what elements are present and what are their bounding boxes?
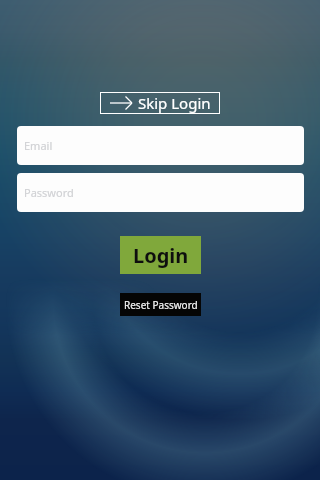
staticText: Password [24,185,74,200]
staticText: Login [133,242,189,269]
staticText: Email [24,138,53,153]
button[interactable]: Password [17,173,304,212]
button[interactable]: Reset Password [120,293,201,316]
button[interactable]: Skip Login [100,92,220,114]
button[interactable]: Email [17,126,304,165]
staticText: Skip Login [138,93,211,113]
staticText: Reset Password [124,298,198,312]
button[interactable]: Login [120,236,201,274]
